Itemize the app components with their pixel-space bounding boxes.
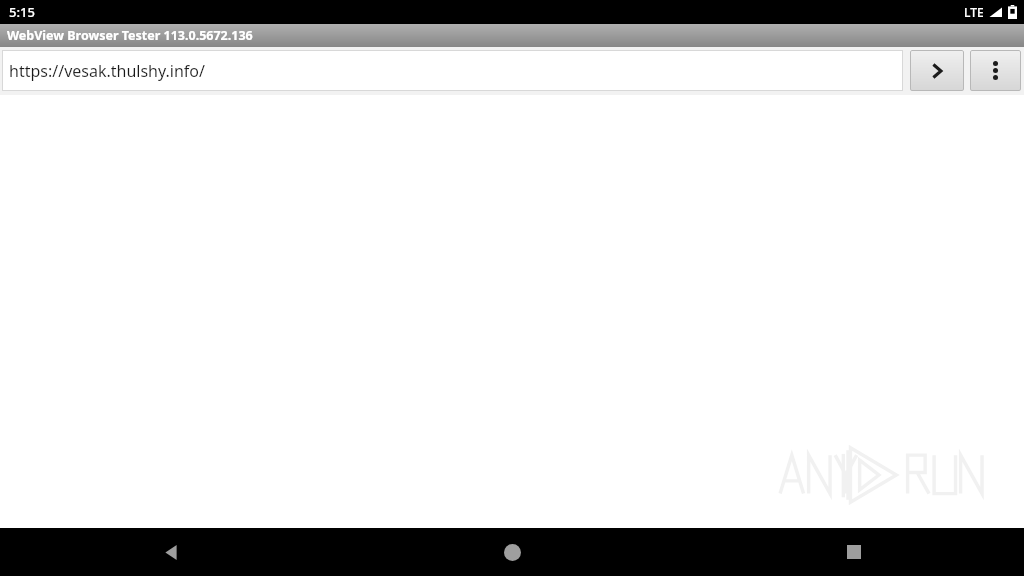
button[interactable]: Recent apps [683,528,1024,576]
button[interactable]: https://vesak.thulshy.info/ [2,50,903,91]
button[interactable]: More options [970,50,1021,91]
button[interactable]: Back [0,528,342,576]
staticText: https://vesak.thulshy.info/ [9,60,205,82]
button[interactable]: Go [910,50,964,91]
staticText: WebView Browser Tester 113.0.5672.136 [7,27,253,44]
button[interactable]: Home [342,528,683,576]
staticText: 5:15 [9,3,35,21]
staticText: LTE [964,4,984,20]
